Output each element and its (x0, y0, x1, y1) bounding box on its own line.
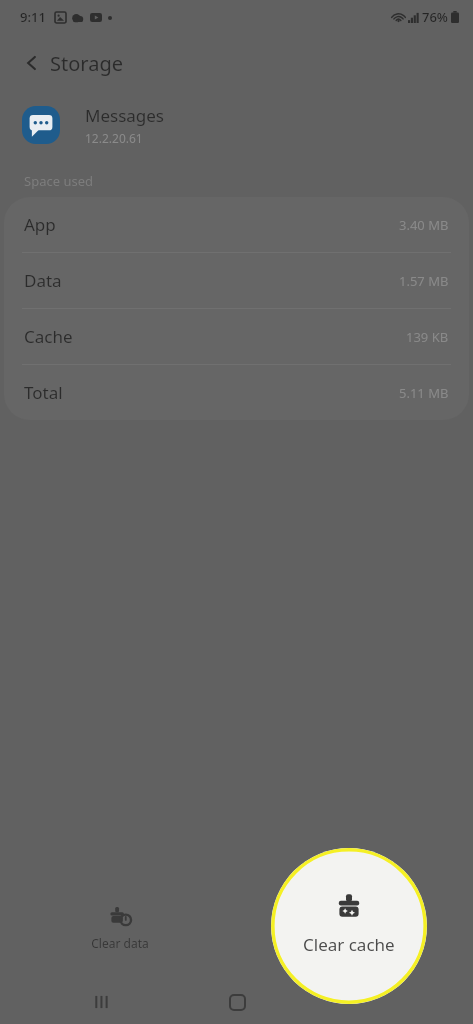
button[interactable]: App (4, 197, 469, 252)
staticText: 5.11 MB (399, 384, 449, 402)
staticText: Total (24, 381, 63, 404)
staticText: App (24, 213, 56, 236)
staticText: 76% (422, 8, 448, 26)
staticText: 12.2.20.61 (85, 130, 143, 146)
button[interactable]: Clear cache (271, 848, 427, 1004)
button[interactable]: Cache (4, 309, 469, 364)
staticText: Cache (24, 325, 73, 348)
staticText: 3.40 MB (399, 216, 449, 234)
button[interactable]: Total (4, 365, 469, 420)
staticText: 1.57 MB (399, 272, 449, 290)
staticText: Clear data (60, 935, 180, 951)
button[interactable]: Data (4, 253, 469, 308)
button[interactable]: Clear data (60, 905, 180, 951)
staticText: 139 KB (406, 328, 449, 346)
button[interactable]: Back (10, 41, 54, 85)
staticText: Data (24, 269, 62, 292)
staticText: Messages (85, 104, 165, 127)
staticText: Space used (24, 172, 93, 190)
staticText: Clear cache (303, 933, 395, 956)
button[interactable]: Recent apps (81, 980, 125, 1024)
staticText: 9:11 (20, 8, 46, 26)
staticText: Storage (50, 50, 123, 77)
button[interactable]: Home (215, 980, 259, 1024)
button[interactable]: Messages (0, 92, 473, 158)
